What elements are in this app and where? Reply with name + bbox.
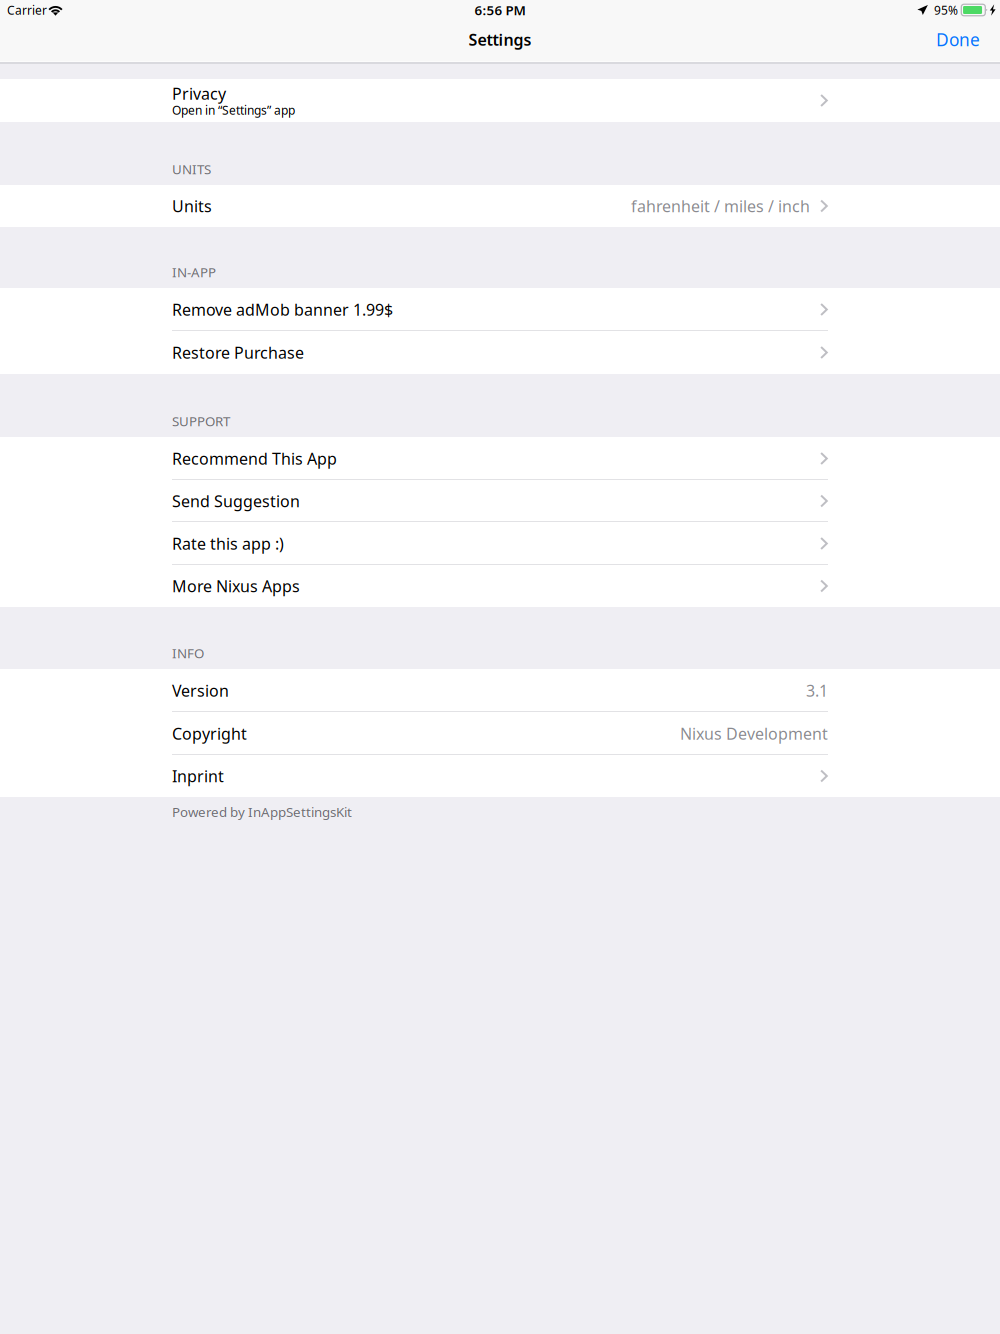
button[interactable]: Units [0, 185, 1000, 227]
staticText: 3.1 [806, 680, 828, 701]
staticText: More Nixus Apps [172, 575, 300, 597]
staticText: Inprint [172, 765, 224, 787]
button[interactable]: Privacy [0, 79, 1000, 122]
button[interactable]: Inprint [0, 755, 1000, 797]
staticText: Done [936, 28, 980, 51]
button[interactable]: Restore Purchase [0, 331, 1000, 374]
staticText: Version [172, 680, 229, 701]
button[interactable]: Done [926, 21, 990, 58]
staticText: INFO [172, 644, 204, 662]
staticText: Copyright [172, 723, 247, 744]
staticText: Privacy [172, 83, 226, 104]
staticText: Restore Purchase [172, 342, 304, 363]
staticText: UNITS [172, 160, 211, 178]
staticText: Carrier [7, 2, 47, 18]
staticText: Units [172, 195, 212, 217]
button[interactable]: More Nixus Apps [0, 565, 1000, 607]
staticText: fahrenheit / miles / inch [631, 195, 810, 217]
button[interactable]: Remove adMob banner 1.99$ [0, 288, 1000, 331]
staticText: Open in “Settings” app [172, 102, 295, 118]
staticText: Rate this app :) [172, 533, 284, 554]
staticText: 6:56 PM [474, 1, 525, 19]
staticText: Send Suggestion [172, 490, 300, 512]
staticText: 95% [934, 2, 958, 18]
button[interactable]: Rate this app :) [0, 522, 1000, 565]
staticText: Nixus Development [680, 723, 828, 744]
button[interactable]: Version [0, 669, 1000, 712]
staticText: Remove adMob banner 1.99$ [172, 299, 393, 320]
staticText: Powered by InAppSettingsKit [172, 803, 352, 821]
button[interactable]: Copyright [0, 712, 1000, 755]
staticText: SUPPORT [172, 412, 230, 430]
button[interactable]: Recommend This App [0, 437, 1000, 480]
staticText: IN-APP [172, 263, 216, 281]
staticText: Recommend This App [172, 448, 337, 469]
button[interactable]: Send Suggestion [0, 480, 1000, 522]
staticText: Settings [468, 29, 531, 50]
